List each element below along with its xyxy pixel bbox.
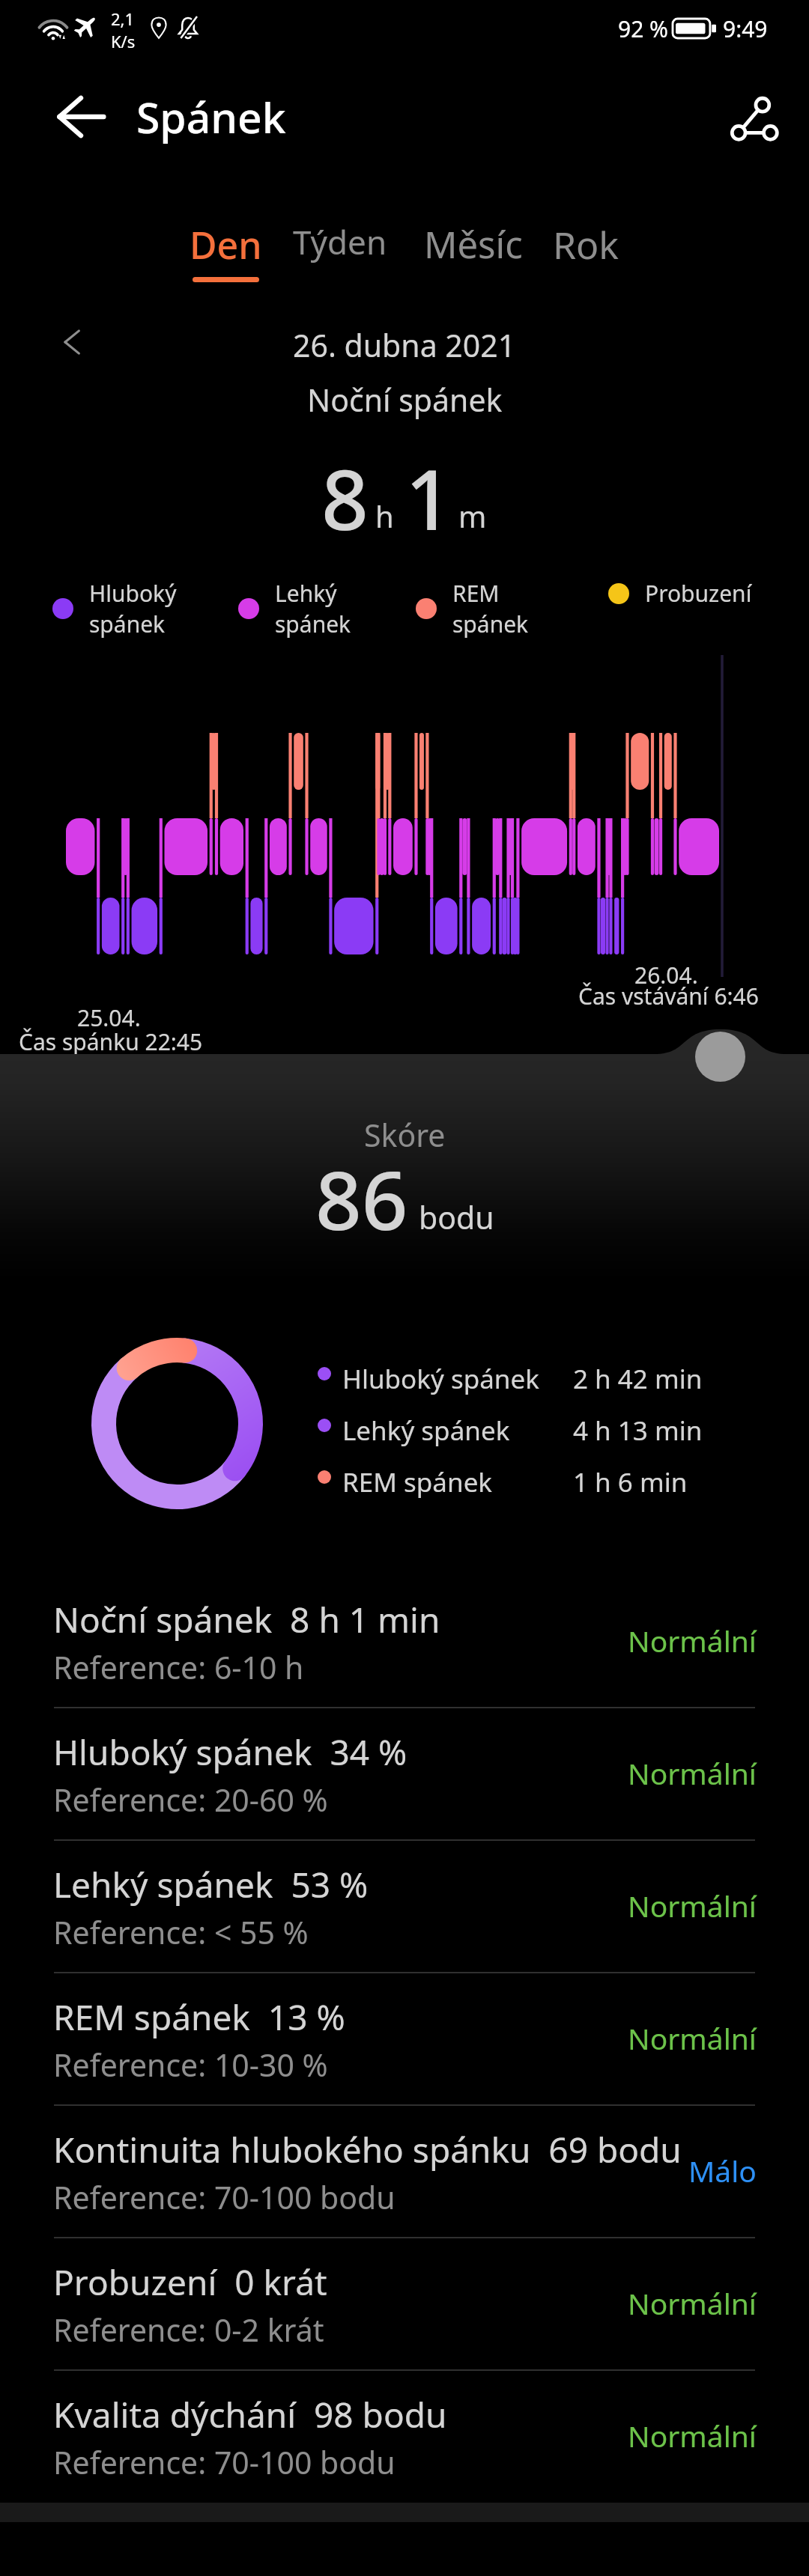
- button[interactable]: Týden: [284, 213, 396, 282]
- staticText: REM: [452, 578, 500, 609]
- staticText: 8: [321, 442, 369, 554]
- staticText: Kvalita dýchání 98 bodu: [53, 2391, 447, 2438]
- staticText: Reference: 70-100 bodu: [53, 2441, 396, 2483]
- staticText: Noční spánek 8 h 1 min: [53, 1596, 440, 1643]
- button[interactable]: Kvalita dýchání 98 bodu: [0, 2369, 809, 2502]
- staticText: Normální: [628, 2416, 757, 2455]
- button[interactable]: Hluboký spánek 34 %: [0, 1707, 809, 1839]
- staticText: Reference: < 55 %: [53, 1911, 309, 1953]
- staticText: Reference: 70-100 bodu: [53, 2176, 396, 2218]
- staticText: Reference: 20-60 %: [53, 1779, 328, 1821]
- staticText: K/s: [111, 30, 136, 52]
- staticText: Normální: [628, 2018, 757, 2058]
- button[interactable]: Rok: [530, 213, 642, 288]
- staticText: Reference: 6-10 h: [53, 1646, 304, 1688]
- staticText: Normální: [628, 1621, 757, 1660]
- staticText: Den: [190, 219, 262, 270]
- staticText: Lehký spánek 53 %: [53, 1861, 369, 1908]
- staticText: Čas spánku 22:45: [19, 1026, 203, 1057]
- staticText: Málo: [688, 2151, 757, 2190]
- staticText: spánek: [452, 609, 529, 639]
- button[interactable]: Share: [719, 82, 788, 151]
- staticText: Měsíc: [424, 219, 523, 270]
- button[interactable]: Previous day: [46, 316, 99, 368]
- staticText: 2,1: [111, 7, 135, 30]
- button[interactable]: Sleep detail: [695, 1032, 745, 1082]
- staticText: Noční spánek: [307, 379, 503, 421]
- staticText: Čas vstávání 6:46: [578, 981, 759, 1011]
- staticText: 26. dubna 2021: [293, 324, 516, 366]
- staticText: Normální: [628, 1886, 757, 1925]
- staticText: spánek: [275, 609, 351, 639]
- staticText: Reference: 0-2 krát: [53, 2309, 324, 2351]
- staticText: REM spánek: [342, 1464, 493, 1500]
- staticText: 2 h 42 min: [573, 1361, 703, 1397]
- button[interactable]: Měsíc: [417, 213, 530, 287]
- staticText: h: [375, 496, 394, 536]
- staticText: 1 h 6 min: [573, 1464, 688, 1500]
- staticText: Spánek: [136, 88, 286, 146]
- staticText: bodu: [419, 1196, 494, 1238]
- staticText: Skóre: [364, 1114, 446, 1156]
- staticText: 9:49: [723, 13, 768, 44]
- button[interactable]: REM spánek 13 %: [0, 1972, 809, 2104]
- staticText: Hluboký: [89, 578, 177, 609]
- button[interactable]: Probuzení 0 krát: [0, 2237, 809, 2369]
- staticText: Normální: [628, 2283, 757, 2323]
- staticText: 92 %: [618, 13, 669, 44]
- staticText: Hluboký spánek: [342, 1361, 539, 1397]
- staticText: Hluboký spánek 34 %: [53, 1729, 407, 1776]
- staticText: m: [458, 496, 487, 536]
- staticText: Týden: [293, 219, 387, 264]
- staticText: 4 h 13 min: [573, 1413, 703, 1449]
- button[interactable]: Den: [169, 213, 282, 288]
- button[interactable]: Noční spánek 8 h 1 min: [0, 1574, 809, 1707]
- staticText: Kontinuita hlubokého spánku 69 bodu: [53, 2126, 682, 2173]
- staticText: Probuzení 0 krát: [53, 2259, 327, 2306]
- staticText: 1: [405, 442, 452, 554]
- staticText: Lehký spánek: [342, 1413, 510, 1449]
- staticText: 86: [315, 1144, 408, 1254]
- staticText: 26.04.: [634, 960, 698, 990]
- staticText: Reference: 10-30 %: [53, 2044, 328, 2086]
- staticText: 25.04.: [77, 1002, 141, 1033]
- button[interactable]: Back: [46, 82, 115, 151]
- staticText: Normální: [628, 1753, 757, 1793]
- staticText: spánek: [89, 609, 166, 639]
- staticText: REM spánek 13 %: [53, 1994, 345, 2041]
- staticText: Probuzení: [645, 578, 752, 609]
- staticText: Rok: [553, 219, 619, 270]
- button[interactable]: Lehký spánek 53 %: [0, 1839, 809, 1972]
- staticText: Lehký: [275, 578, 337, 609]
- button[interactable]: Kontinuita hlubokého spánku 69 bodu: [0, 2104, 809, 2237]
